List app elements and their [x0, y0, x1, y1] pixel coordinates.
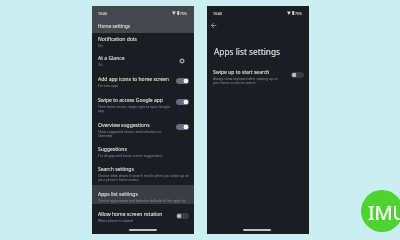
button[interactable]	[92, 54, 194, 72]
button[interactable]	[92, 165, 194, 183]
staticText: Allow home screen rotation	[98, 211, 163, 218]
staticText: At a Glance	[98, 55, 125, 62]
staticText: IMUI	[368, 199, 400, 226]
staticText: On	[98, 63, 103, 67]
staticText: Home settings	[98, 23, 131, 29]
button[interactable]	[92, 75, 194, 93]
staticText: 10:44	[98, 11, 107, 16]
button[interactable]	[92, 190, 194, 208]
staticText: Choose appearance and behavior defaults …	[98, 199, 186, 203]
staticText: Apps list settings	[214, 46, 281, 57]
staticText: Overview suggestions	[98, 122, 150, 129]
staticText: Search settings	[98, 166, 134, 173]
button[interactable]: Back	[207, 19, 220, 32]
button[interactable]	[92, 34, 194, 52]
staticText: Choose what shows in search results when…	[98, 174, 192, 182]
button[interactable]	[92, 120, 194, 138]
button[interactable]	[92, 210, 194, 228]
button[interactable]	[92, 95, 194, 113]
button[interactable]	[92, 145, 194, 163]
staticText: Swipe up to start search	[213, 69, 270, 76]
staticText: 10:44	[213, 11, 222, 16]
staticText: For new apps	[98, 84, 119, 88]
staticText: For all apps and home screen suggestions	[98, 154, 163, 158]
staticText: 75%	[295, 11, 302, 16]
staticText: When phone is rotated	[98, 219, 133, 223]
staticText: Apps list settings	[98, 191, 138, 198]
staticText: Notification dots	[98, 36, 137, 43]
staticText: Show suggested actions and indicators in…	[98, 130, 174, 138]
staticText: Swipe to access Google app	[98, 97, 163, 104]
button[interactable]	[207, 66, 309, 87]
staticText: On	[98, 44, 103, 48]
staticText: Suggestions	[98, 146, 127, 153]
staticText: 75%	[180, 11, 187, 16]
staticText: Add app icons to home screen	[98, 76, 169, 83]
staticText: Always show keyboard after swiping up on…	[213, 77, 283, 85]
staticText: From home screen, swipe right to open Go…	[98, 105, 174, 113]
